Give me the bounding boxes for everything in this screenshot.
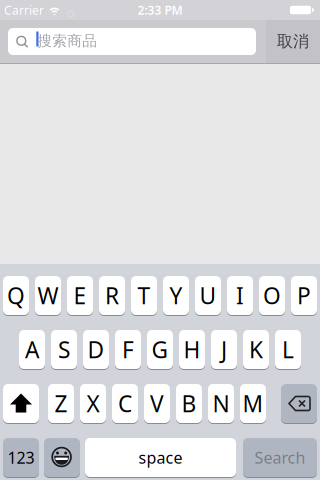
staticText: 123 (7, 447, 34, 468)
button[interactable]: L (275, 330, 301, 370)
button[interactable]: 取消 (266, 20, 320, 63)
button[interactable]: H (179, 330, 205, 370)
button[interactable]: V (144, 384, 170, 424)
staticText: D (87, 334, 104, 364)
button[interactable]: C (112, 384, 138, 424)
button[interactable]: M (240, 384, 266, 424)
staticText: C (118, 388, 132, 418)
button[interactable]: Search (243, 438, 317, 478)
button[interactable]: Delete (281, 384, 317, 424)
staticText: 2:33 PM (137, 2, 182, 18)
staticText: P (297, 280, 311, 310)
button[interactable]: G (147, 330, 173, 370)
staticText: Carrier (4, 2, 44, 18)
staticText: Z (54, 388, 67, 418)
button[interactable]: N (208, 384, 234, 424)
staticText: S (58, 334, 70, 364)
staticText: L (282, 334, 294, 364)
button[interactable]: I (227, 276, 253, 316)
staticText: E (73, 280, 86, 310)
button[interactable]: 123 (3, 438, 39, 478)
button[interactable]: space (85, 438, 236, 478)
button[interactable]: Emoji (44, 438, 80, 478)
staticText: X (86, 388, 99, 418)
button[interactable]: 搜索商品 (8, 28, 256, 55)
button[interactable]: F (115, 330, 141, 370)
staticText: Y (169, 280, 182, 310)
staticText: Q (7, 280, 25, 310)
staticText: K (249, 334, 263, 364)
button[interactable]: Shift (3, 384, 39, 424)
staticText: R (105, 280, 119, 310)
staticText: O (263, 280, 281, 310)
button[interactable]: U (195, 276, 221, 316)
button[interactable]: Y (163, 276, 189, 316)
staticText: J (221, 334, 227, 364)
staticText: I (236, 280, 244, 310)
staticText: B (181, 388, 196, 418)
button[interactable]: D (83, 330, 109, 370)
staticText: U (199, 280, 216, 310)
staticText: Search (254, 447, 305, 468)
button[interactable]: R (99, 276, 125, 316)
button[interactable]: Q (3, 276, 29, 316)
staticText: space (138, 447, 182, 468)
staticText: G (151, 334, 168, 364)
staticText: 搜索商品 (37, 32, 97, 50)
button[interactable]: S (51, 330, 77, 370)
button[interactable]: O (259, 276, 285, 316)
staticText: F (122, 334, 134, 364)
staticText: A (25, 334, 39, 364)
button[interactable]: K (243, 330, 269, 370)
button[interactable]: X (80, 384, 106, 424)
button[interactable]: W (35, 276, 61, 316)
staticText: N (212, 388, 229, 418)
button[interactable]: J (211, 330, 237, 370)
button[interactable]: B (176, 384, 202, 424)
button[interactable]: T (131, 276, 157, 316)
staticText: T (137, 280, 150, 310)
button[interactable]: Z (48, 384, 74, 424)
button[interactable]: E (67, 276, 93, 316)
button[interactable]: A (19, 330, 45, 370)
staticText: 取消 (277, 32, 309, 51)
staticText: H (183, 334, 200, 364)
staticText: M (242, 388, 263, 418)
staticText: V (150, 388, 164, 418)
staticText: W (37, 280, 58, 310)
button[interactable]: P (291, 276, 317, 316)
